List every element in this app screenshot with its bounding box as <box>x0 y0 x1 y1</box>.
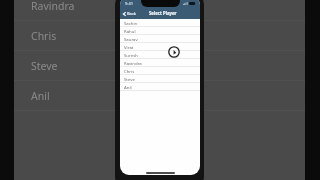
button[interactable]: Anil <box>14 81 305 111</box>
button[interactable]: Saurav <box>120 35 200 43</box>
staticText: Steve <box>124 76 135 82</box>
button[interactable]: Ravindra <box>14 0 305 21</box>
staticText: Anil <box>31 89 50 103</box>
button[interactable]: Steve <box>14 51 305 81</box>
staticText: Saurav <box>124 36 138 42</box>
button[interactable]: Chris <box>14 21 305 51</box>
button[interactable]: Sachin <box>120 19 200 27</box>
button[interactable]: Steve <box>120 75 200 83</box>
button[interactable]: Rahul <box>120 27 200 35</box>
staticText: Anil <box>124 84 132 90</box>
button[interactable]: Back <box>120 10 140 17</box>
staticText: 9:41 <box>125 1 133 6</box>
staticText: Select Player <box>149 10 177 16</box>
button[interactable]: Ravindra <box>120 59 200 67</box>
staticText: Sachin <box>124 20 138 26</box>
staticText: Back <box>127 11 137 16</box>
staticText: Chris <box>124 68 135 74</box>
button[interactable]: Virat <box>120 43 200 51</box>
staticText: Rahul <box>124 28 136 34</box>
button[interactable]: Suresh <box>120 51 200 59</box>
staticText: Chris <box>31 29 57 43</box>
staticText: Suresh <box>124 52 138 58</box>
other: Tap indicator <box>168 46 180 58</box>
button[interactable]: Chris <box>120 67 200 75</box>
staticText: Ravindra <box>31 0 75 13</box>
staticText: Steve <box>31 59 58 73</box>
button[interactable]: Anil <box>120 83 200 91</box>
staticText: Virat <box>124 44 134 50</box>
staticText: Ravindra <box>124 60 142 66</box>
